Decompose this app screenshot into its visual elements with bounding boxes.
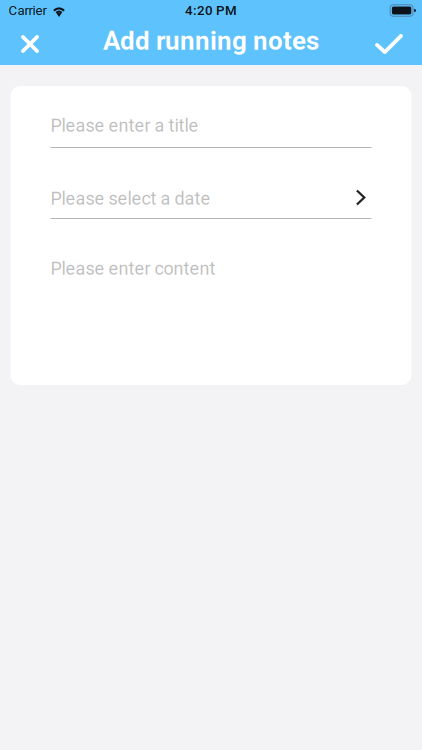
button[interactable]: Close [0,21,58,65]
button[interactable]: Please enter a title [50,116,371,148]
staticText: Please enter a title [50,115,198,136]
button[interactable]: Save [364,21,422,65]
staticText: Add running notes [103,26,319,56]
staticText: Please enter content [50,258,215,279]
staticText: Carrier [8,3,46,18]
button[interactable]: Please select a date [50,189,371,219]
staticText: Please select a date [50,188,210,209]
button[interactable]: Please enter content [50,259,371,278]
staticText: 4:20 PM [185,3,237,18]
